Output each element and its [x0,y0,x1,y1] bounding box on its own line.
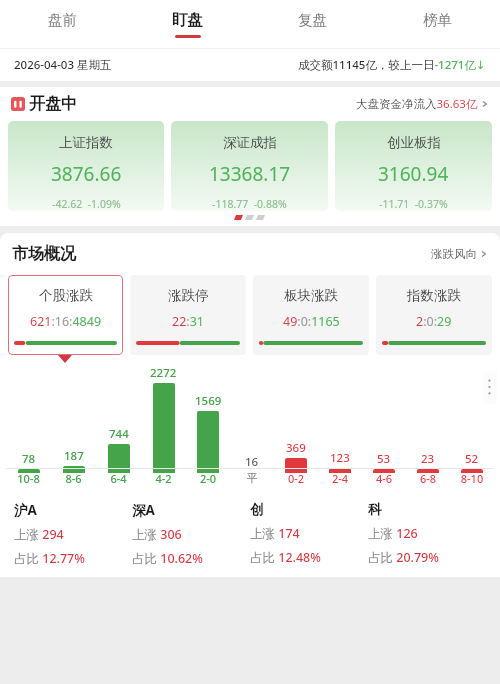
button[interactable]: 盘前 [0,0,125,48]
button[interactable]: 复盘 [250,0,375,48]
staticText: 2-0 [186,471,230,486]
staticText: 23 [421,451,435,467]
staticText: -11.71 -0.37% [379,197,448,211]
staticText: 1569 [195,393,222,409]
staticText: 平 [230,471,274,485]
staticText: -42.62 -1.09% [52,197,121,211]
button[interactable]: 大盘资金净流入36.63亿 [356,96,489,112]
button[interactable]: 榜单 [375,0,500,48]
staticText: 大盘资金净流入36.63亿 [356,96,478,112]
button[interactable]: More [482,370,497,404]
staticText: 榜单 [423,11,452,29]
button[interactable]: 指数涨跌 [376,275,492,355]
staticText: 8-6 [51,471,96,486]
button[interactable]: 上证指数 [8,121,164,211]
staticText: 开盘中 [29,94,77,114]
staticText: 成交额11145亿，较上一日-1271亿↓ [298,57,486,73]
staticText: 369 [286,440,306,456]
staticText: 53 [377,451,391,467]
staticText: 621:16:4849 [30,313,102,330]
staticText: 2-4 [318,471,362,486]
staticText: 744 [109,426,129,442]
staticText: 占比 10.62% [132,550,203,567]
button[interactable]: 个股涨跌 [8,275,123,355]
staticText: 123 [330,450,350,466]
staticText: 指数涨跌 [407,287,461,304]
staticText: 3160.94 [378,161,449,187]
staticText: 6-8 [406,471,450,486]
button[interactable]: 沪A [14,501,132,567]
staticText: 创 [250,501,264,518]
staticText: 盯盘 [172,10,203,30]
staticText: 16 [245,454,259,470]
staticText: 上证指数 [59,134,113,151]
button[interactable]: 创业板指 [335,121,492,211]
button[interactable]: 涨跌停 [130,275,246,355]
button[interactable]: 深证成指 [171,121,328,211]
staticText: 52 [465,451,479,467]
staticText: -118.77 -0.88% [212,197,287,211]
staticText: 涨跌风向 [431,247,477,261]
staticText: 8-10 [450,471,494,486]
staticText: 深证成指 [223,134,277,151]
staticText: 2272 [150,365,177,381]
staticText: 3876.66 [51,161,122,187]
button[interactable]: 板块涨跌 [253,275,369,355]
staticText: 10-8 [6,471,51,486]
staticText: 2026-04-03 星期五 [14,57,112,73]
button[interactable]: 盯盘 [125,0,250,48]
button[interactable]: 涨跌风向 [431,247,488,261]
staticText: 市场概况 [12,244,76,264]
staticText: 上涨 126 [368,525,418,542]
staticText: 创业板指 [387,134,441,151]
staticText: 科 [368,501,382,518]
staticText: 49:0:1165 [283,313,340,330]
staticText: 上涨 294 [14,526,64,543]
staticText: 4-2 [141,471,186,486]
staticText: 涨跌停 [168,287,209,304]
button[interactable]: 科 [368,501,486,566]
staticText: 22:31 [172,313,204,330]
staticText: 上涨 306 [132,526,182,543]
staticText: 盘前 [48,11,77,29]
staticText: 0-2 [274,471,318,486]
staticText: 78 [22,451,36,467]
staticText: 板块涨跌 [284,287,338,304]
staticText: 占比 20.79% [368,549,439,566]
staticText: 沪A [14,501,37,519]
staticText: 复盘 [298,11,327,29]
staticText: 4-6 [362,471,406,486]
staticText: 187 [64,448,84,464]
staticText: 个股涨跌 [39,287,93,304]
staticText: 13368.17 [209,161,291,187]
button[interactable]: 创 [250,501,368,566]
staticText: 2:0:29 [416,313,452,330]
staticText: 占比 12.48% [250,549,321,566]
staticText: 上涨 174 [250,525,300,542]
button[interactable]: 深A [132,501,250,567]
staticText: 深A [132,501,155,519]
staticText: 占比 12.77% [14,550,85,567]
staticText: 6-4 [96,471,141,486]
